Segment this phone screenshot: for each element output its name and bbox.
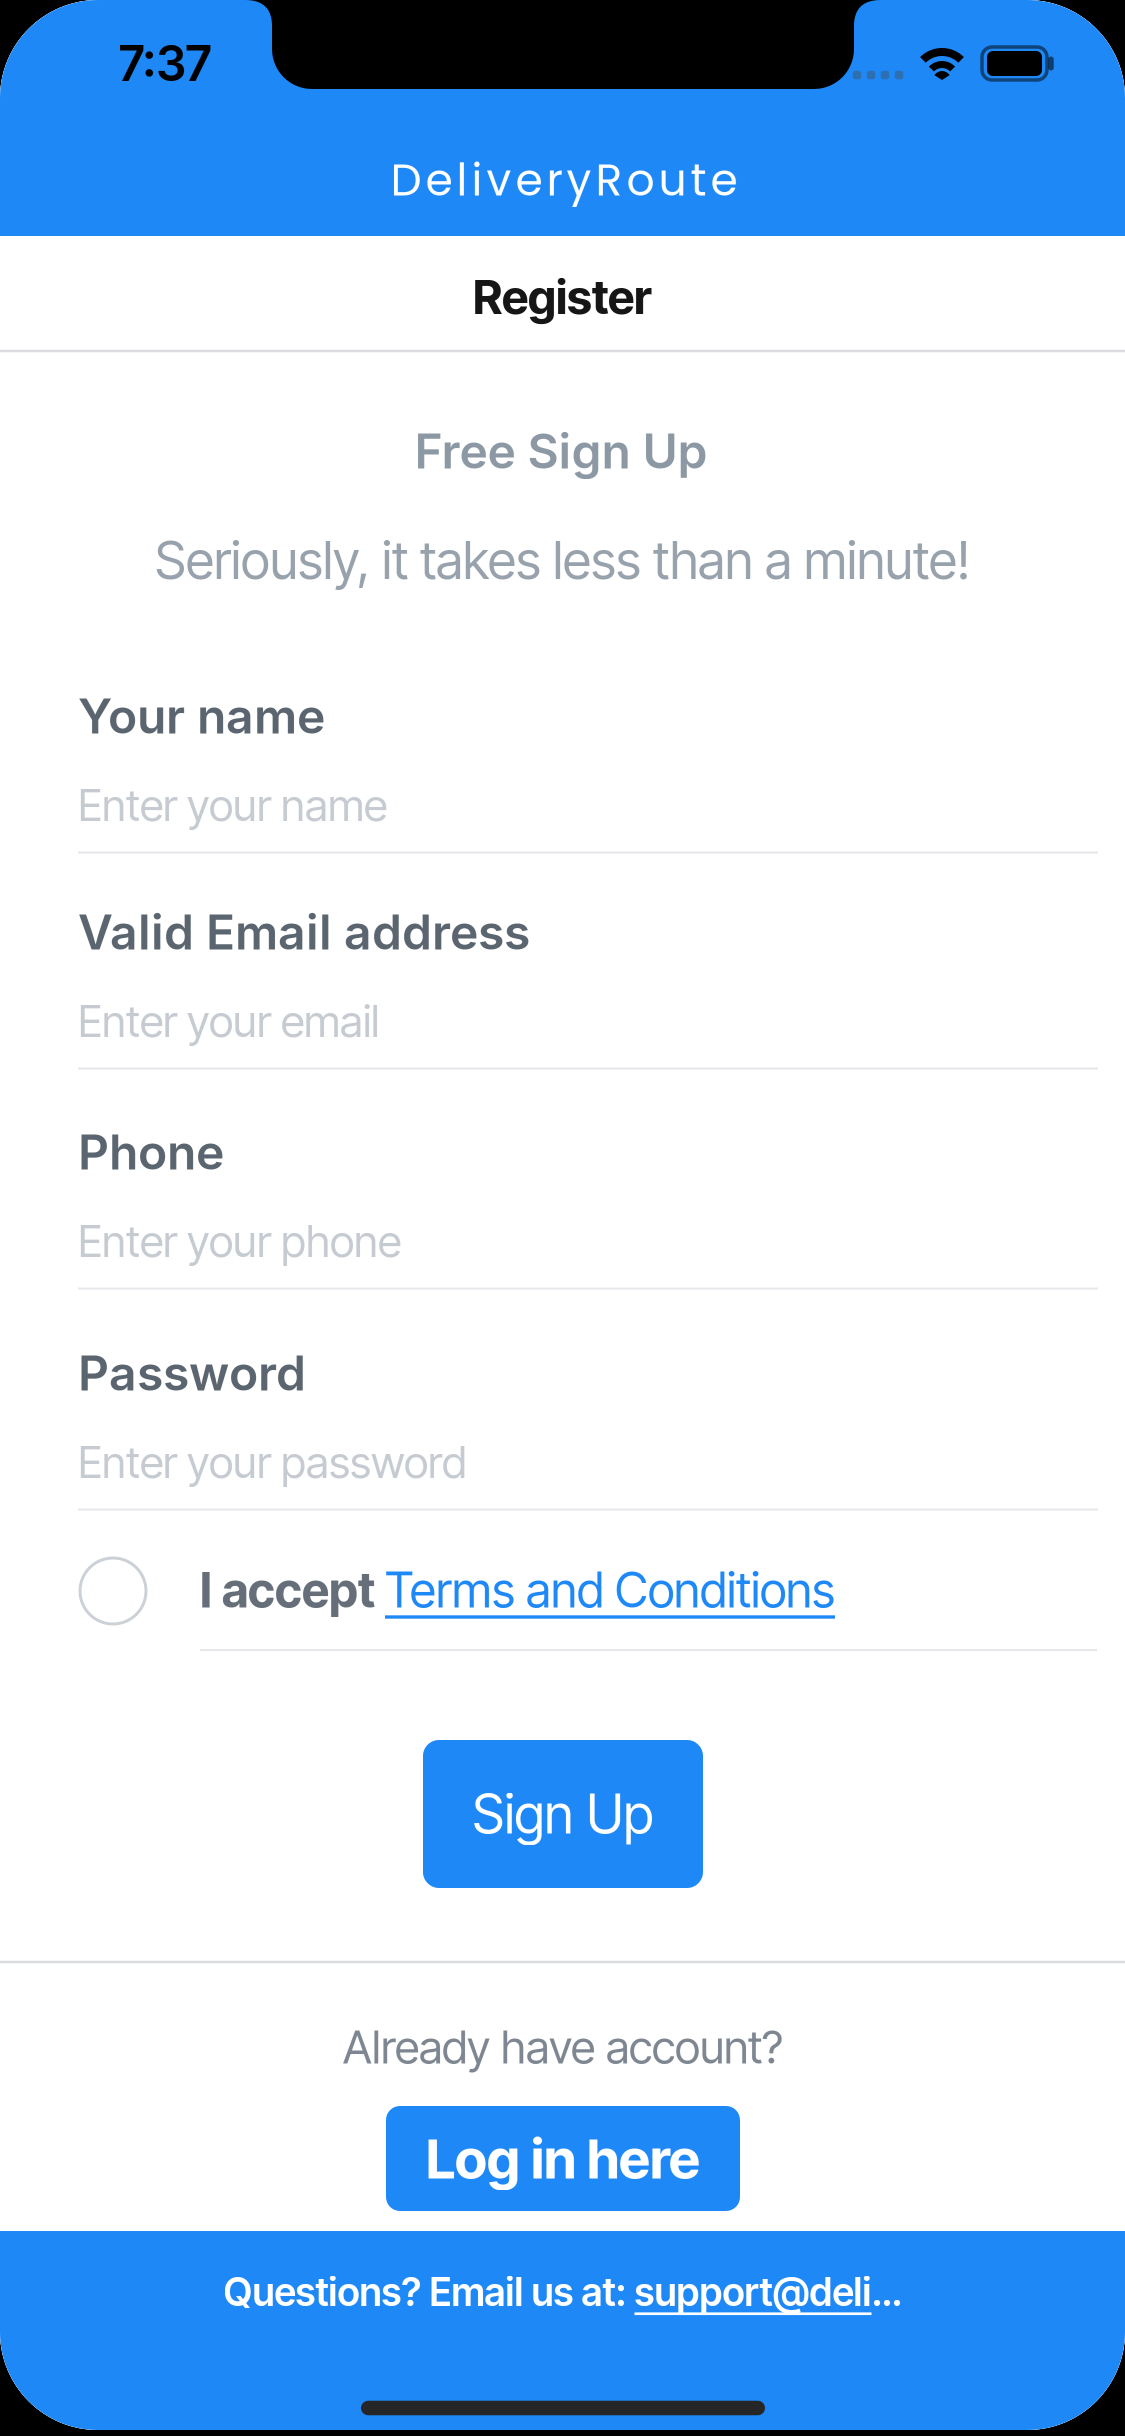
button[interactable]: Log in here	[386, 2106, 740, 2211]
staticText: Enter your phone	[78, 1214, 401, 1268]
staticText: Register	[473, 269, 652, 325]
staticText: Log in here	[426, 2125, 700, 2191]
staticText: Sign Up	[472, 1782, 653, 1846]
staticText: Already have account?	[343, 2020, 783, 2074]
staticText: 7:37	[118, 34, 211, 93]
button[interactable]: Enter your email	[78, 971, 1098, 1068]
staticText: Valid Email address	[78, 903, 530, 961]
staticText: Password	[78, 1344, 306, 1402]
button[interactable]: Accept Terms and Conditions	[80, 1558, 146, 1624]
staticText: Phone	[78, 1123, 224, 1181]
staticText: Enter your name	[78, 778, 387, 832]
staticText: Enter your email	[78, 994, 379, 1048]
button[interactable]: Terms and Conditions	[385, 1561, 835, 1619]
staticText: I accept	[200, 1561, 385, 1619]
button[interactable]: Sign Up	[423, 1740, 703, 1888]
staticText: Enter your password	[78, 1435, 467, 1489]
staticText: Terms and Conditions	[385, 1561, 835, 1619]
staticText: Free Sign Up	[414, 422, 707, 480]
staticText: Questions? Email us at:	[223, 2269, 634, 2315]
button[interactable]: Enter your name	[78, 755, 1098, 852]
staticText: support@deli…	[634, 2269, 901, 2315]
button[interactable]: Enter your password	[78, 1412, 1098, 1509]
button[interactable]: Enter your phone	[78, 1191, 1098, 1288]
button[interactable]: Email support	[634, 2269, 901, 2315]
staticText: Seriously, it takes less than a minute!	[155, 528, 970, 591]
staticText: Your name	[78, 687, 325, 745]
staticText: DeliveryRoute	[390, 149, 737, 211]
